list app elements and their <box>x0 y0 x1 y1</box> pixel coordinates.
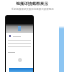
staticText: 手机视频播放页面的完整展示效果预览 <box>11 8 54 11</box>
staticText: 视频详情截图展示 <box>16 1 48 6</box>
